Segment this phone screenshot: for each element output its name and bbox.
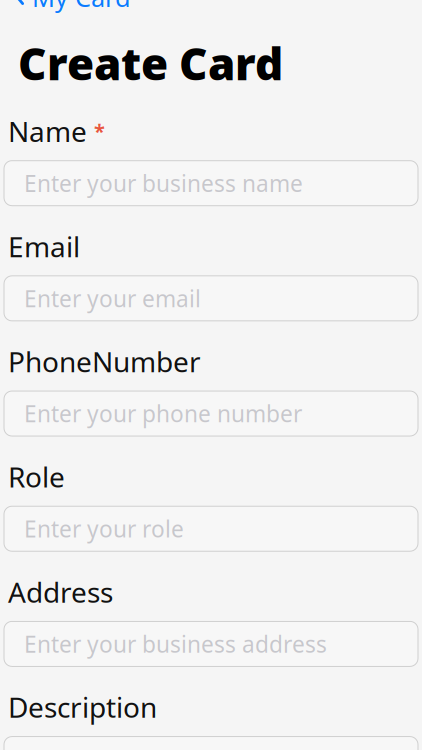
- staticText: Role: [8, 458, 65, 495]
- button[interactable]: Enter your role: [4, 506, 418, 551]
- staticText: Create Card: [18, 34, 283, 92]
- button[interactable]: Enter your email: [4, 276, 418, 321]
- button[interactable]: My Card: [0, 0, 145, 18]
- staticText: *: [94, 118, 105, 144]
- staticText: Description: [8, 688, 157, 726]
- staticText: Enter your email: [24, 283, 201, 313]
- staticText: Enter your business address: [24, 629, 327, 659]
- staticText: Enter your business name: [24, 168, 303, 198]
- staticText: Address: [8, 573, 113, 610]
- staticText: PhoneNumber: [8, 343, 201, 380]
- button[interactable]: Enter your business address: [4, 621, 418, 666]
- button[interactable]: Enter your business name: [4, 161, 418, 206]
- staticText: Name: [8, 112, 87, 150]
- staticText: Enter your phone number: [24, 398, 302, 429]
- button[interactable]: Enter your phone number: [4, 391, 418, 436]
- staticText: Enter your role: [24, 514, 184, 544]
- staticText: My Card: [32, 0, 131, 14]
- staticText: Email: [8, 228, 80, 265]
